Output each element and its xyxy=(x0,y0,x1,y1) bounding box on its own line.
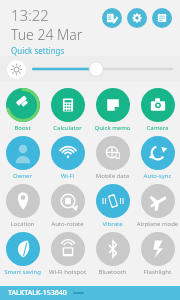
button[interactable]: Edit quick settings xyxy=(102,8,122,28)
staticText: TALKTALK-153640 xyxy=(8,288,67,298)
button[interactable]: Bluetooth xyxy=(90,232,135,276)
button[interactable]: Location xyxy=(0,184,45,228)
staticText: Vibrate xyxy=(90,220,135,228)
button[interactable]: Notifications list xyxy=(152,8,172,28)
staticText: Bluetooth xyxy=(90,268,135,276)
button[interactable]: Camera xyxy=(135,88,180,132)
button[interactable]: Auto brightness xyxy=(7,60,26,79)
button[interactable]: Boost xyxy=(0,88,45,132)
staticText: 13:22 xyxy=(11,5,49,25)
button[interactable]: Airplane mode xyxy=(135,184,180,228)
staticText: Calculator xyxy=(45,124,90,132)
staticText: Smart saving xyxy=(0,268,45,276)
staticText: Auto-sync xyxy=(135,172,180,180)
staticText: Tue 24 Mar xyxy=(11,25,83,44)
button[interactable]: Auto-sync xyxy=(135,136,180,180)
staticText: Boost xyxy=(0,124,45,132)
staticText: Mobile data xyxy=(90,172,135,180)
button[interactable]: Calculator xyxy=(45,88,90,132)
button[interactable]: Quick memo xyxy=(90,88,135,132)
staticText: Quick settings xyxy=(11,45,65,56)
button[interactable]: Vibrate xyxy=(90,184,135,228)
staticText: Flashlight xyxy=(135,268,180,276)
button[interactable]: Auto-rotate xyxy=(45,184,90,228)
staticText: Quick memo xyxy=(90,124,135,132)
staticText: Airplane mode xyxy=(135,220,180,228)
button[interactable]: Quick settings xyxy=(11,45,65,56)
button[interactable]: Flashlight xyxy=(135,232,180,276)
staticText: Owner xyxy=(0,172,45,180)
button[interactable]: Smart saving xyxy=(0,232,45,276)
button[interactable]: TALKTALK-153640 xyxy=(0,286,180,300)
staticText: Wi-Fi hotspot xyxy=(45,268,90,276)
button[interactable]: Owner xyxy=(0,136,45,180)
button[interactable]: Wi-Fi hotspot xyxy=(45,232,90,276)
staticText: Location xyxy=(0,220,45,228)
staticText: Wi-Fi xyxy=(45,172,90,180)
button[interactable]: Wi-Fi xyxy=(45,136,90,180)
button[interactable]: Mobile data xyxy=(90,136,135,180)
button[interactable]: Settings xyxy=(127,8,147,28)
button[interactable] xyxy=(32,59,173,79)
staticText: Auto-rotate xyxy=(45,220,90,228)
staticText: Camera xyxy=(135,124,180,132)
